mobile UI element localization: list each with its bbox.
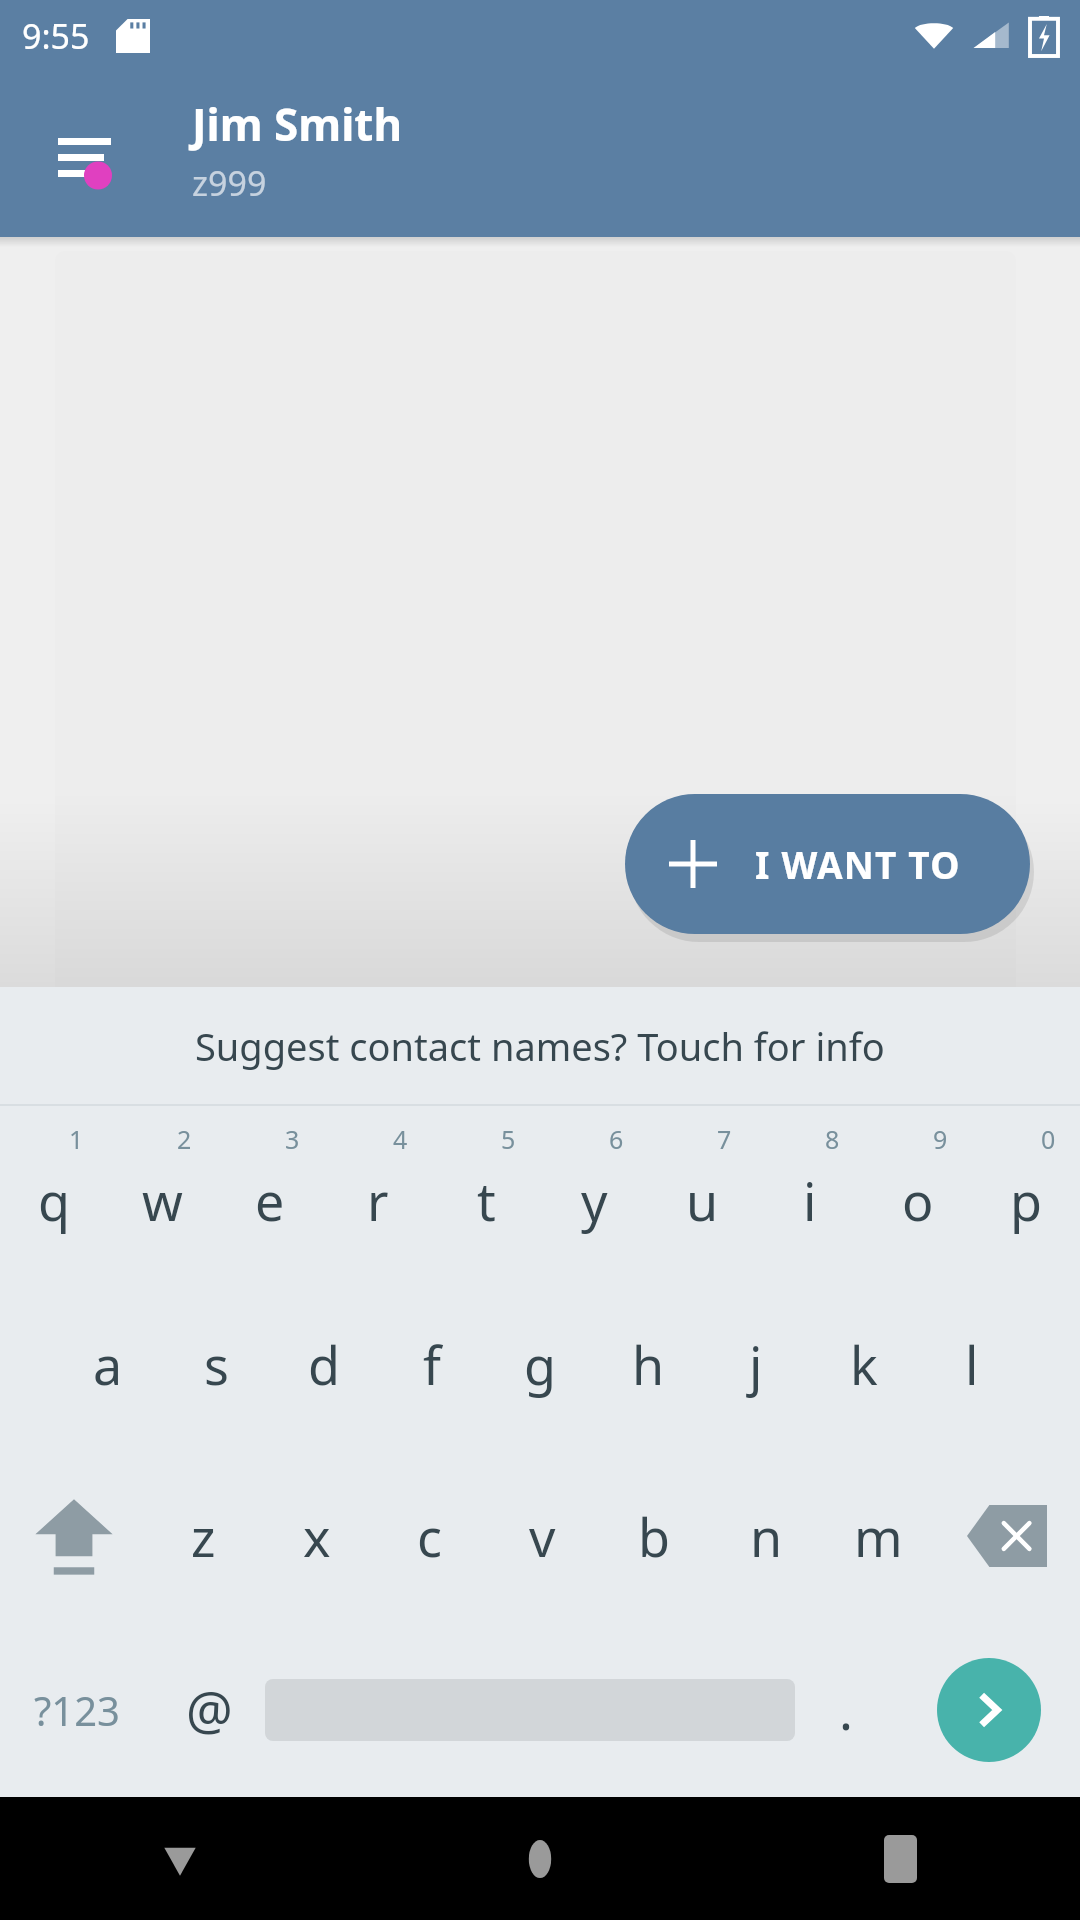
button[interactable]: n <box>710 1450 822 1622</box>
staticText: m <box>854 1501 903 1572</box>
button[interactable]: Home <box>360 1797 720 1920</box>
staticText: l <box>965 1329 979 1400</box>
staticText: i <box>803 1165 817 1236</box>
staticText: q <box>38 1165 70 1236</box>
staticText: u <box>686 1165 719 1236</box>
staticText: 7 <box>717 1122 732 1156</box>
button[interactable]: h <box>594 1278 702 1450</box>
button[interactable]: 5 <box>432 1106 540 1278</box>
staticText: c <box>417 1501 442 1572</box>
staticText: 3 <box>285 1122 300 1156</box>
button[interactable]: 3 <box>216 1106 324 1278</box>
staticText: y <box>581 1165 608 1236</box>
staticText: 9 <box>933 1122 948 1156</box>
staticText: t <box>477 1165 496 1236</box>
staticText: 5 <box>501 1122 516 1156</box>
button[interactable]: d <box>270 1278 378 1450</box>
staticText: Suggest contact names? Touch for info <box>195 1020 885 1072</box>
button[interactable]: j <box>702 1278 810 1450</box>
staticText: a <box>93 1329 123 1400</box>
button[interactable]: Enter <box>937 1658 1041 1762</box>
button[interactable]: b <box>598 1450 710 1622</box>
staticText: g <box>524 1329 556 1400</box>
staticText: ?123 <box>34 1683 120 1737</box>
button[interactable]: @ <box>153 1622 265 1797</box>
button[interactable]: ?123 <box>0 1622 153 1797</box>
button[interactable] <box>55 251 1016 1001</box>
staticText: I WANT TO <box>755 839 961 889</box>
staticText: r <box>367 1165 389 1236</box>
staticText: d <box>308 1329 340 1400</box>
button[interactable]: Backspace <box>934 1450 1080 1622</box>
staticText: f <box>423 1329 441 1400</box>
button[interactable]: c <box>373 1450 486 1622</box>
button[interactable]: x <box>260 1450 373 1622</box>
staticText: 0 <box>1041 1122 1056 1156</box>
button[interactable]: Shift <box>0 1450 147 1622</box>
button[interactable]: m <box>822 1450 934 1622</box>
button[interactable]: f <box>378 1278 486 1450</box>
button[interactable]: 4 <box>324 1106 432 1278</box>
button[interactable]: 2 <box>108 1106 216 1278</box>
staticText: 2 <box>177 1122 192 1156</box>
staticText: p <box>1010 1165 1042 1236</box>
staticText: w <box>142 1165 183 1236</box>
button[interactable]: s <box>162 1278 270 1450</box>
button[interactable]: z <box>147 1450 260 1622</box>
staticText: 9:55 <box>22 13 90 59</box>
staticText: 8 <box>825 1122 840 1156</box>
button[interactable]: 6 <box>540 1106 648 1278</box>
button[interactable]: v <box>486 1450 598 1622</box>
staticText: h <box>632 1329 665 1400</box>
button[interactable]: Back <box>0 1797 360 1920</box>
button[interactable]: k <box>810 1278 918 1450</box>
button[interactable]: Recent apps <box>720 1797 1080 1920</box>
staticText: 1 <box>69 1122 84 1156</box>
button[interactable]: 9 <box>864 1106 972 1278</box>
button[interactable]: g <box>486 1278 594 1450</box>
button[interactable]: 8 <box>756 1106 864 1278</box>
staticText: 6 <box>609 1122 624 1156</box>
button[interactable]: 0 <box>972 1106 1080 1278</box>
button[interactable]: 7 <box>648 1106 756 1278</box>
staticText: z <box>191 1501 216 1572</box>
staticText: 4 <box>393 1122 408 1156</box>
staticText: v <box>529 1501 556 1572</box>
staticText: x <box>303 1501 331 1572</box>
button[interactable]: Open navigation menu <box>40 112 128 200</box>
staticText: b <box>638 1501 670 1572</box>
button[interactable]: a <box>54 1278 162 1450</box>
button[interactable]: Suggest contact names? Touch for info <box>0 987 1080 1104</box>
staticText: @ <box>186 1674 233 1745</box>
button[interactable]: . <box>795 1622 897 1797</box>
button[interactable]: I WANT TO <box>625 794 1030 934</box>
button[interactable]: 1 <box>0 1106 108 1278</box>
staticText: Jim Smith <box>192 94 403 154</box>
staticText: j <box>749 1329 763 1400</box>
button[interactable]: l <box>918 1278 1026 1450</box>
staticText: k <box>850 1329 878 1400</box>
staticText: . <box>839 1674 853 1745</box>
staticText: n <box>750 1501 783 1572</box>
staticText: e <box>255 1165 285 1236</box>
staticText: s <box>204 1329 229 1400</box>
staticText: z999 <box>192 160 267 206</box>
staticText: o <box>902 1165 934 1236</box>
